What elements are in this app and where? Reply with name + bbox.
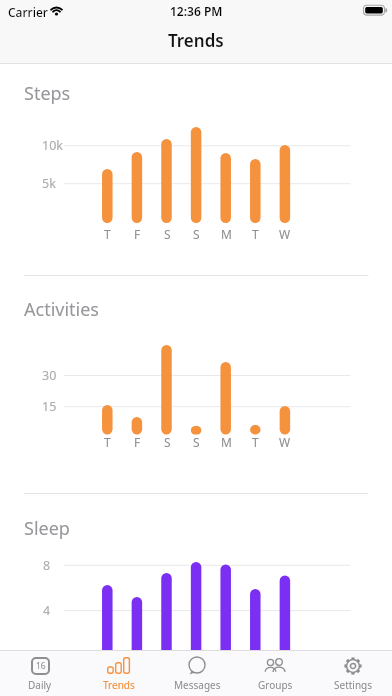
staticText: 10k <box>42 137 63 154</box>
staticText: Settings <box>334 678 373 692</box>
staticText: Groups <box>258 678 293 692</box>
staticText: Activities <box>24 297 99 322</box>
staticText: 15 <box>42 398 57 415</box>
button[interactable]: 16 <box>0 650 79 696</box>
staticText: 12:36 PM <box>170 3 223 19</box>
staticText: 8 <box>43 557 51 574</box>
button[interactable]: Groups <box>236 650 314 696</box>
button[interactable]: Settings <box>314 650 392 696</box>
staticText: Messages <box>174 678 221 692</box>
staticText: T <box>252 434 259 450</box>
staticText: Sleep <box>24 516 70 541</box>
staticText: 16 <box>36 660 46 672</box>
staticText: Trends <box>168 29 224 52</box>
staticText: Daily <box>28 678 52 692</box>
staticText: W <box>279 226 291 242</box>
staticText: T <box>104 226 111 242</box>
button[interactable]: Messages <box>158 650 236 696</box>
staticText: T <box>104 434 111 450</box>
staticText: M <box>221 226 232 242</box>
staticText: W <box>279 434 291 450</box>
staticText: Steps <box>24 81 71 106</box>
staticText: S <box>193 434 200 450</box>
staticText: Trends <box>103 678 135 692</box>
staticText: S <box>193 226 200 242</box>
button[interactable]: Trends <box>79 650 158 696</box>
staticText: T <box>252 226 259 242</box>
staticText: 30 <box>42 367 57 384</box>
staticText: S <box>164 226 171 242</box>
staticText: M <box>221 434 232 450</box>
staticText: F <box>134 434 141 450</box>
staticText: Carrier <box>8 4 48 20</box>
staticText: 4 <box>43 602 51 619</box>
staticText: F <box>134 226 141 242</box>
staticText: S <box>164 434 171 450</box>
staticText: 5k <box>42 175 56 192</box>
